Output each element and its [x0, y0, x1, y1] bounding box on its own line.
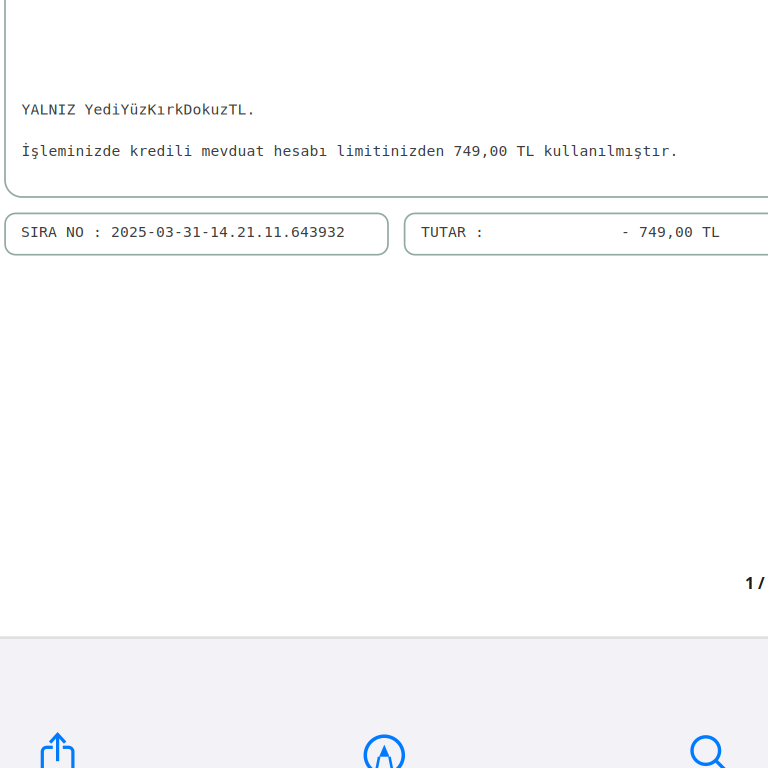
button[interactable]: Markup	[338, 718, 430, 768]
staticText: YALNIZ YediYüzKırkDokuzTL.	[21, 101, 255, 118]
staticText: 1 / 1	[745, 572, 768, 594]
button[interactable]: Search	[660, 714, 752, 768]
staticText: - 749,00 TL	[621, 223, 720, 240]
staticText: TUTAR :	[421, 223, 484, 240]
button[interactable]: Share	[12, 719, 104, 768]
staticText: İşleminizde kredili mevduat hesabı limit…	[21, 142, 678, 160]
staticText: SIRA NO : 2025-03-31-14.21.11.643932	[21, 223, 345, 240]
